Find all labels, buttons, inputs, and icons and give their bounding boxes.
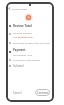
staticText: Review Total (13, 24, 32, 28)
staticText: Continue (37, 91, 49, 95)
staticText: Delivery address (13, 31, 32, 34)
staticText: Subtotal (13, 64, 24, 68)
button[interactable]: Continue (35, 89, 50, 96)
other: Back (8, 7, 11, 10)
button[interactable]: Cancel (11, 89, 24, 96)
staticText: 123 Example Way (13, 35, 33, 38)
staticText: Order review (12, 7, 28, 10)
button[interactable]: Estimated delivery date and time (8, 40, 52, 45)
staticText: Estimated delivery date and time (13, 41, 50, 44)
button[interactable]: Promotion code applied (8, 57, 52, 62)
staticText: Cancel (13, 91, 22, 95)
staticText: Payment (13, 48, 26, 52)
button[interactable]: Back (8, 6, 32, 11)
staticText: Promotion code applied (13, 58, 40, 61)
button[interactable]: Delivery address (8, 30, 52, 38)
staticText: Visa ending 1234 (13, 53, 33, 56)
button[interactable]: Review Total (8, 23, 52, 29)
button[interactable]: Payment (8, 47, 52, 56)
button[interactable]: Subtotal (8, 63, 52, 68)
